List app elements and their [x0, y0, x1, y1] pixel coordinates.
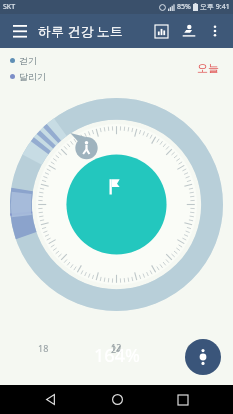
button[interactable]: Menu — [6, 17, 34, 45]
staticText: 오후 9:41 — [200, 2, 230, 12]
staticText: 24 — [111, 343, 122, 355]
button[interactable]: More options — [185, 339, 221, 375]
button[interactable]: 오늘 — [193, 59, 223, 77]
staticText: 164% — [94, 343, 140, 368]
staticText: 12 — [111, 341, 122, 353]
staticText: 걷기 — [19, 55, 37, 66]
staticText: 85% — [177, 2, 191, 12]
staticText: 18 — [38, 342, 49, 354]
button[interactable]: Recent apps — [166, 385, 200, 414]
staticText: 하루 건강 노트 — [38, 22, 123, 40]
staticText: 달리기 — [19, 71, 46, 82]
button[interactable]: Chart — [147, 17, 175, 45]
button[interactable]: Goal progress 164 percent — [67, 311, 167, 385]
button[interactable]: Location — [175, 17, 203, 45]
button[interactable]: More options — [203, 19, 227, 43]
staticText: 오늘 — [197, 61, 219, 75]
button[interactable]: Home — [100, 385, 134, 414]
button[interactable]: Back — [33, 385, 67, 414]
staticText: 6 — [187, 342, 193, 354]
staticText: SKT — [3, 2, 16, 12]
